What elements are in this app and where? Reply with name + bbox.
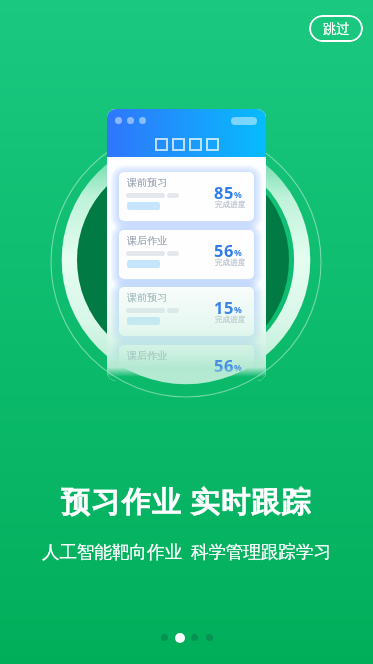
staticText: 课前预习 [127, 291, 167, 304]
staticText: 56 [214, 239, 234, 261]
staticText: 课后作业 [127, 234, 167, 247]
staticText: 课前预习 [127, 176, 167, 189]
button[interactable]: Page 4 [202, 630, 217, 645]
staticText: 85 [214, 181, 234, 203]
staticText: 课后作业 [127, 349, 167, 362]
button[interactable]: 跳过 [309, 15, 363, 42]
button[interactable]: Page 3 [187, 630, 202, 645]
staticText: % [234, 247, 242, 259]
staticText: 跳过 [323, 20, 350, 37]
staticText: 完成进度 [215, 373, 246, 381]
staticText: % [234, 189, 242, 201]
staticText: 56 [214, 354, 234, 376]
staticText: 完成进度 [215, 258, 246, 268]
staticText: % [234, 304, 242, 316]
button[interactable]: Page 2 [172, 630, 187, 645]
staticText: 预习作业 实时跟踪 [61, 481, 312, 521]
staticText: 完成进度 [215, 200, 246, 210]
staticText: 15 [214, 296, 234, 318]
button[interactable]: Page 1 [157, 630, 172, 645]
staticText: 完成进度 [215, 315, 246, 325]
staticText: 人工智能靶向作业 科学管理跟踪学习 [42, 539, 332, 563]
staticText: % [234, 362, 242, 374]
